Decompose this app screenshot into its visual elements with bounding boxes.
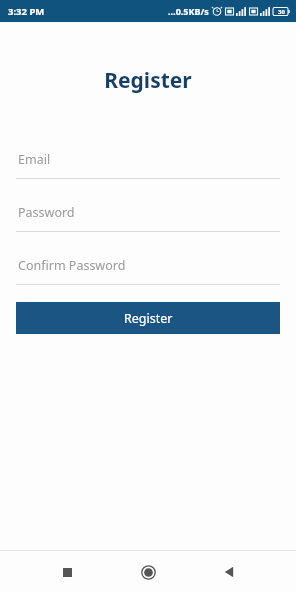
button[interactable]: Register [16, 302, 280, 334]
button[interactable]: Back [212, 555, 246, 589]
button[interactable]: Password [16, 200, 280, 232]
staticText: 30 [278, 8, 285, 16]
button[interactable]: Home [131, 555, 165, 589]
staticText: Register [124, 310, 173, 327]
staticText: Password [18, 204, 75, 221]
staticText: Email [18, 151, 51, 168]
staticText: Register [0, 66, 296, 95]
staticText: …0.5KB/s [168, 5, 209, 17]
staticText: 3:32 PM [8, 5, 45, 18]
button[interactable]: Email [16, 147, 280, 179]
button[interactable]: Confirm Password [16, 253, 280, 285]
staticText: Confirm Password [18, 257, 126, 274]
button[interactable]: Recent apps [50, 555, 84, 589]
